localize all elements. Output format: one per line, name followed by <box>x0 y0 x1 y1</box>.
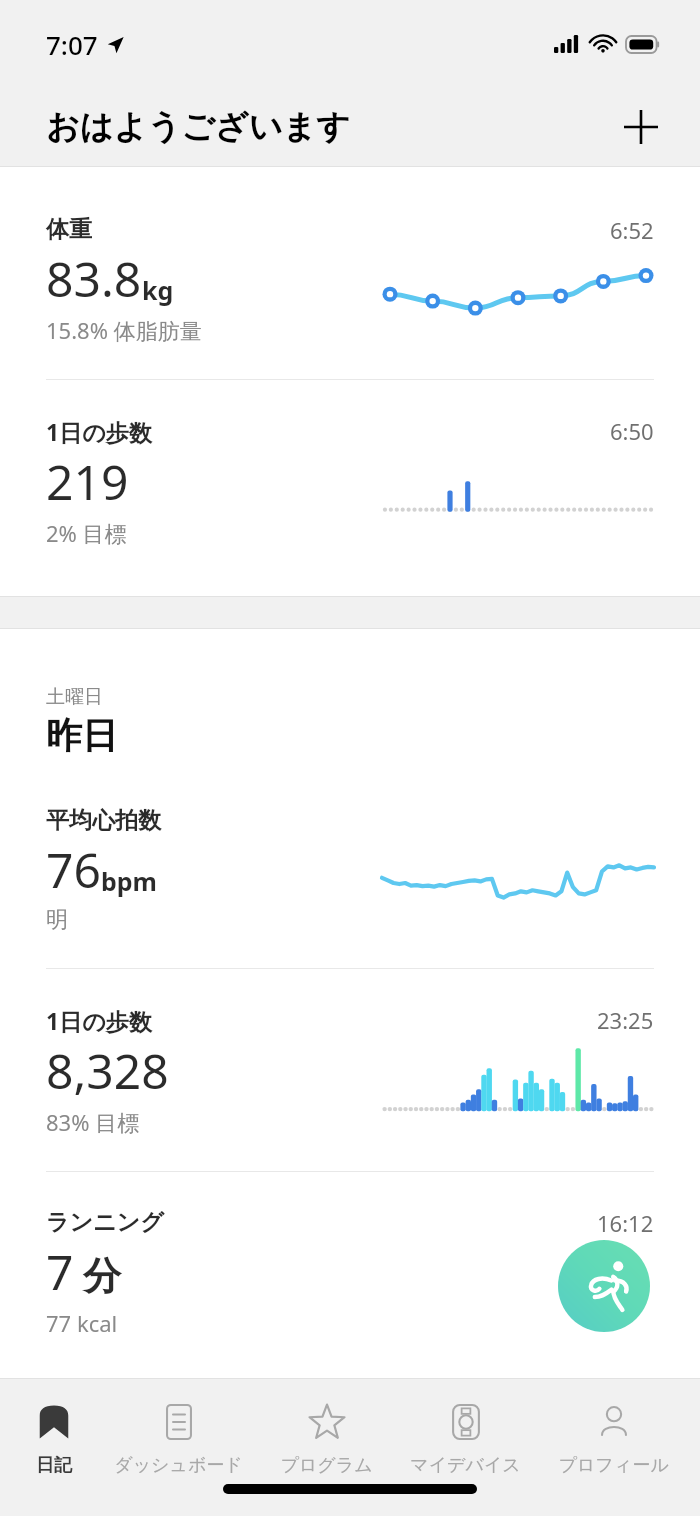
staticText: おはようございます <box>46 106 350 148</box>
staticText: ランニング <box>46 1208 164 1237</box>
staticText: 77 kcal <box>46 1308 118 1338</box>
button[interactable]: 1日の歩数 <box>0 969 700 1171</box>
staticText: 16:12 <box>597 1208 654 1238</box>
staticText: 分 <box>83 1252 121 1300</box>
button[interactable]: プロフィール <box>552 1397 675 1479</box>
button[interactable]: Add <box>618 104 664 150</box>
button[interactable]: マイデバイス <box>404 1397 527 1479</box>
staticText: 明 <box>46 906 68 934</box>
button[interactable]: ダッシュボード <box>108 1397 249 1479</box>
button[interactable]: 日記 <box>25 1397 83 1479</box>
staticText: 83% 目標 <box>46 1107 140 1137</box>
staticText: bpm <box>101 864 157 898</box>
staticText: 1日の歩数 <box>46 416 152 447</box>
staticText: 6:50 <box>610 416 654 446</box>
staticText: プログラム <box>280 1454 373 1477</box>
staticText: マイデバイス <box>410 1454 521 1477</box>
staticText: 6:52 <box>610 215 654 245</box>
button[interactable]: 1日の歩数 <box>0 380 700 582</box>
staticText: 2% 目標 <box>46 518 127 548</box>
staticText: 15.8% 体脂肪量 <box>46 315 202 345</box>
staticText: 土曜日 <box>46 685 103 709</box>
staticText: 日記 <box>36 1454 72 1477</box>
staticText: プロフィール <box>558 1454 669 1477</box>
staticText: 7 <box>46 1239 74 1304</box>
button[interactable]: 体重 <box>0 167 700 379</box>
staticText: 1日の歩数 <box>46 1005 152 1036</box>
button[interactable]: ランニング <box>0 1172 700 1368</box>
staticText: 8,328 <box>46 1038 169 1103</box>
staticText: ダッシュボード <box>114 1454 243 1477</box>
staticText: kg <box>142 273 174 307</box>
staticText: 7:07 <box>46 27 98 62</box>
button[interactable]: 平均心拍数 <box>0 758 700 968</box>
staticText: 23:25 <box>597 1005 654 1035</box>
staticText: 体重 <box>46 215 92 244</box>
staticText: 平均心拍数 <box>46 806 161 835</box>
staticText: 219 <box>46 449 129 514</box>
button[interactable]: プログラム <box>274 1397 379 1479</box>
staticText: 76 <box>46 837 101 902</box>
staticText: 昨日 <box>46 713 118 758</box>
staticText: 83.8 <box>46 246 142 311</box>
